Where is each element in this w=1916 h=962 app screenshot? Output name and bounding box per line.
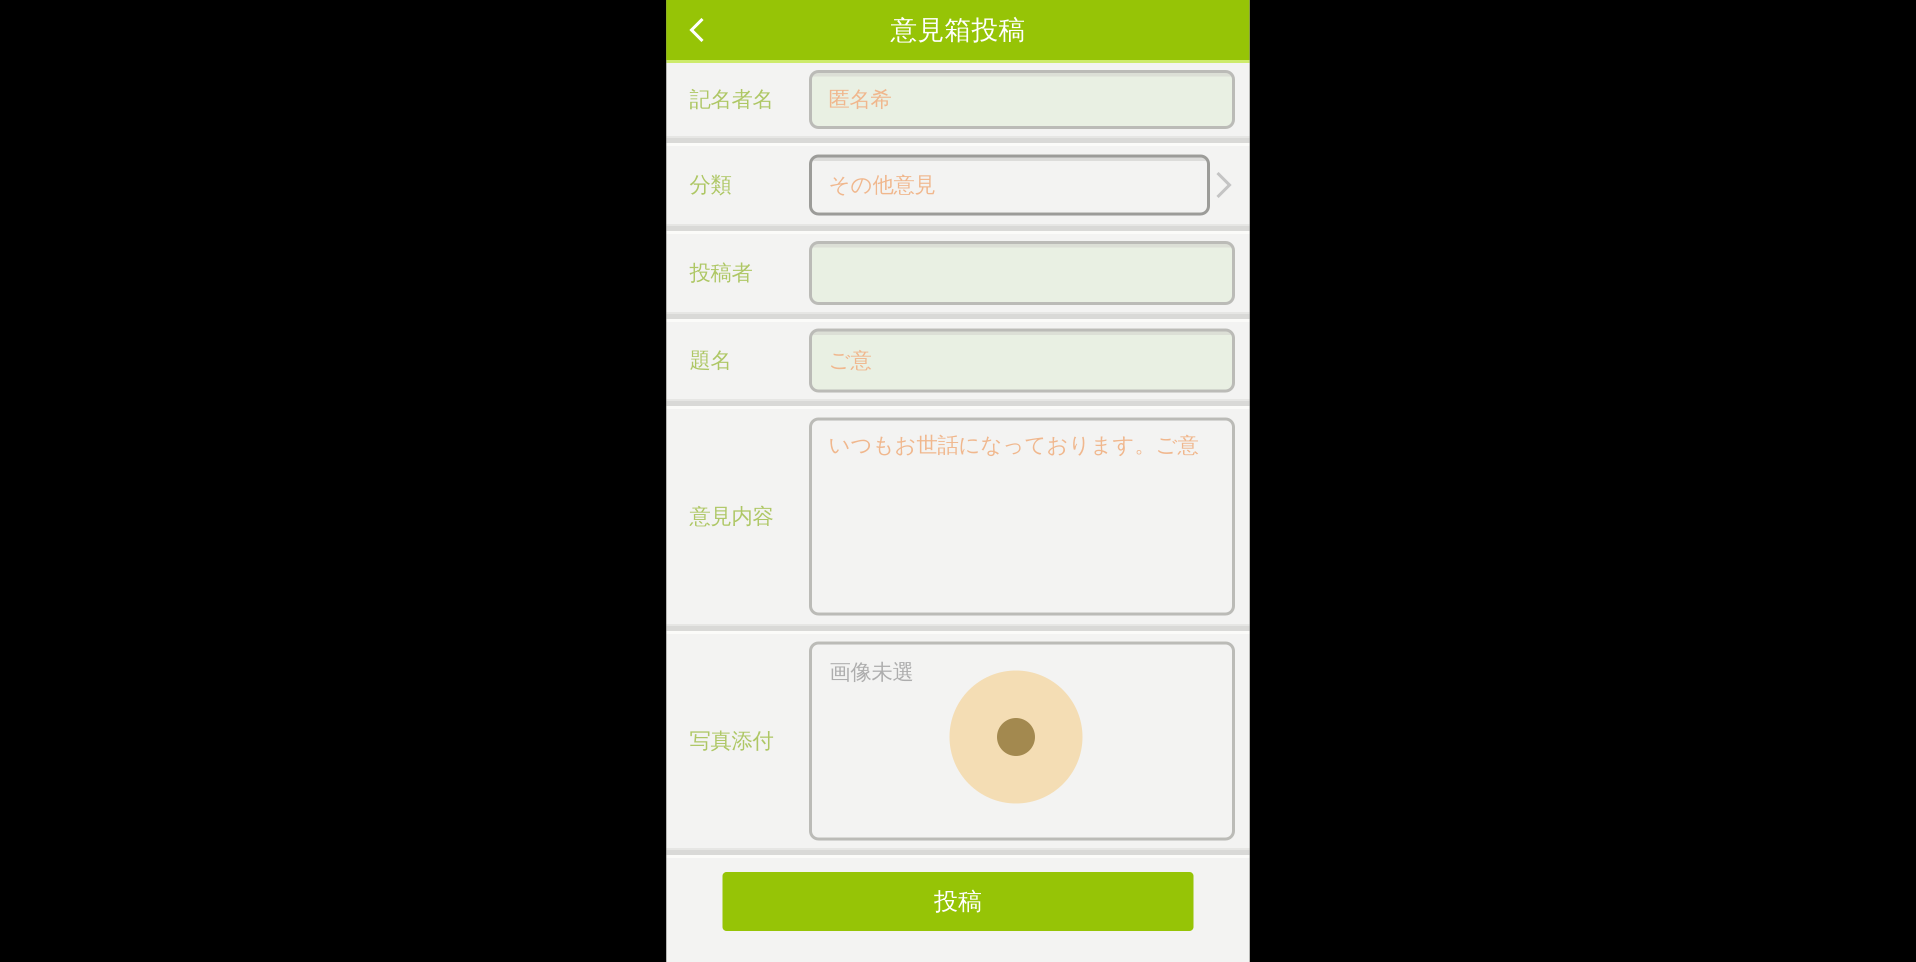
staticText: 記名者名 (689, 86, 773, 113)
staticText: 写真添付 (689, 728, 773, 754)
button[interactable]: 分類 (666, 146, 1249, 224)
staticText: 匿名希 (828, 86, 891, 113)
button[interactable]: 投稿者 (666, 234, 1249, 312)
staticText: ご意 (828, 347, 871, 374)
staticText: 投稿 (934, 887, 982, 916)
button[interactable]: 意見内容 (666, 409, 1249, 624)
button[interactable]: 題名 (666, 322, 1249, 399)
staticText: 投稿者 (689, 260, 752, 286)
staticText: 分類 (689, 172, 731, 198)
staticText: いつもお世話になっております。ご意 (828, 432, 1198, 458)
staticText: 画像未選 (829, 659, 913, 685)
button[interactable]: 記名者名 (666, 63, 1249, 136)
button[interactable]: 写真を添付 (810, 643, 1233, 839)
button[interactable]: 投稿 (722, 872, 1193, 931)
staticText: 意見内容 (689, 503, 773, 530)
staticText: 題名 (689, 347, 731, 374)
staticText: 意見箱投稿 (890, 14, 1025, 46)
button[interactable]: 戻る (666, 0, 730, 60)
staticText: その他意見 (828, 172, 935, 198)
